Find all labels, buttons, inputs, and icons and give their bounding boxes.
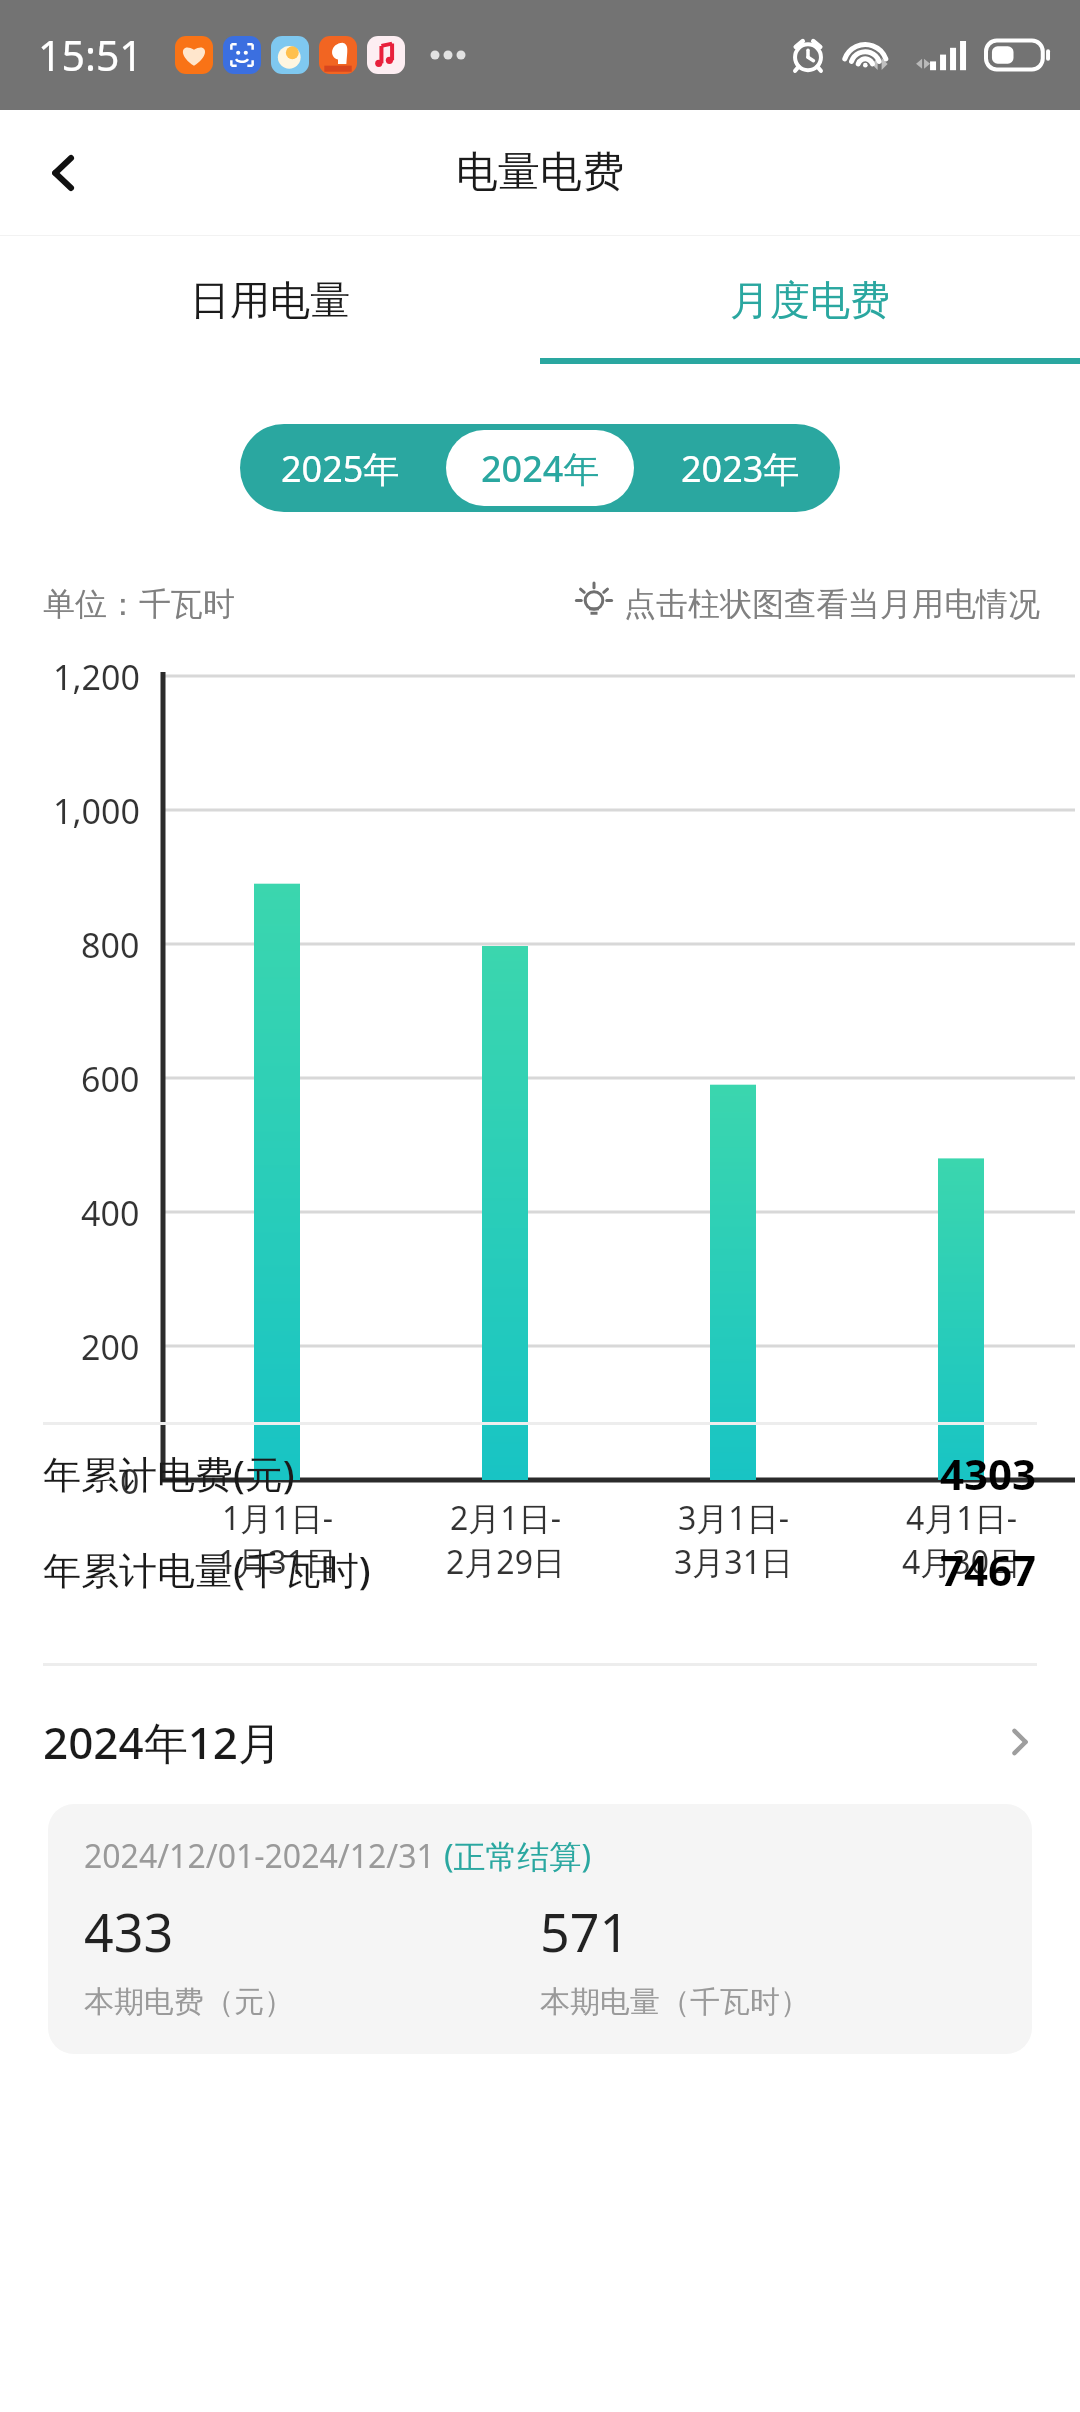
staticText: 本期电量（千瓦时） (540, 1983, 810, 2021)
button[interactable]: 3月1日- 3月31日 (619, 1496, 847, 1583)
staticText: 2023年 (681, 444, 800, 493)
button[interactable]: 4月1日- 4月30日 (847, 1496, 1075, 1583)
staticText: 年累计电费(元) (43, 1447, 295, 1499)
staticText: 2024/12/01-2024/12/31 (84, 1834, 444, 1878)
staticText: 2024年 (481, 444, 600, 493)
button[interactable]: 月度电费 (540, 236, 1080, 364)
button[interactable]: 2月1日- 2月29日 (391, 1496, 619, 1583)
staticText: 电量电费 (456, 146, 624, 199)
staticText: 2月1日- 2月29日 (446, 1496, 565, 1583)
staticText: (正常结算) (444, 1834, 592, 1878)
staticText: 月度电费 (730, 275, 890, 325)
button[interactable]: 日用电量 (0, 236, 540, 364)
staticText: 日用电量 (190, 275, 350, 325)
staticText: 7467 (940, 1541, 1037, 1598)
staticText: 本期电费（元） (84, 1983, 294, 2021)
button[interactable]: 年累计电量(千瓦时) (43, 1521, 1037, 1617)
staticText: 4月1日- 4月30日 (902, 1496, 1021, 1583)
staticText: 0 (120, 1458, 140, 1504)
staticText: 4303 (940, 1445, 1037, 1502)
button[interactable]: 2023年 (646, 430, 834, 506)
button[interactable]: 返回 (22, 131, 106, 215)
button[interactable]: 2025年 (246, 430, 434, 506)
staticText: 433 (84, 1896, 174, 1967)
staticText: 200 (81, 1324, 140, 1370)
button[interactable]: 1月1日- 1月31日 (163, 1496, 391, 1583)
staticText: 600 (81, 1056, 140, 1102)
staticText: 单位：千瓦时 (43, 584, 235, 624)
staticText: 1月1日- 1月31日 (218, 1496, 337, 1583)
staticText: 15:51 (38, 27, 143, 83)
staticText: 1,000 (53, 788, 140, 834)
button[interactable]: 年累计电费(元) (43, 1425, 1037, 1521)
staticText: 点击柱状图查看当月用电情况 (624, 584, 1040, 624)
staticText: 2025年 (281, 444, 400, 493)
staticText: 400 (81, 1190, 140, 1236)
staticText: 571 (540, 1896, 630, 1967)
button[interactable]: 2024年 (446, 430, 634, 506)
staticText: 年累计电量(千瓦时) (43, 1543, 371, 1595)
button[interactable]: 2024年12月 (43, 1694, 1040, 1790)
staticText: 2024年12月 (43, 1712, 283, 1772)
staticText: 800 (81, 922, 140, 968)
staticText: 3月1日- 3月31日 (674, 1496, 793, 1583)
staticText: 1,200 (53, 654, 140, 700)
button[interactable]: 2024/12/01-2024/12/31 (48, 1804, 1032, 2054)
